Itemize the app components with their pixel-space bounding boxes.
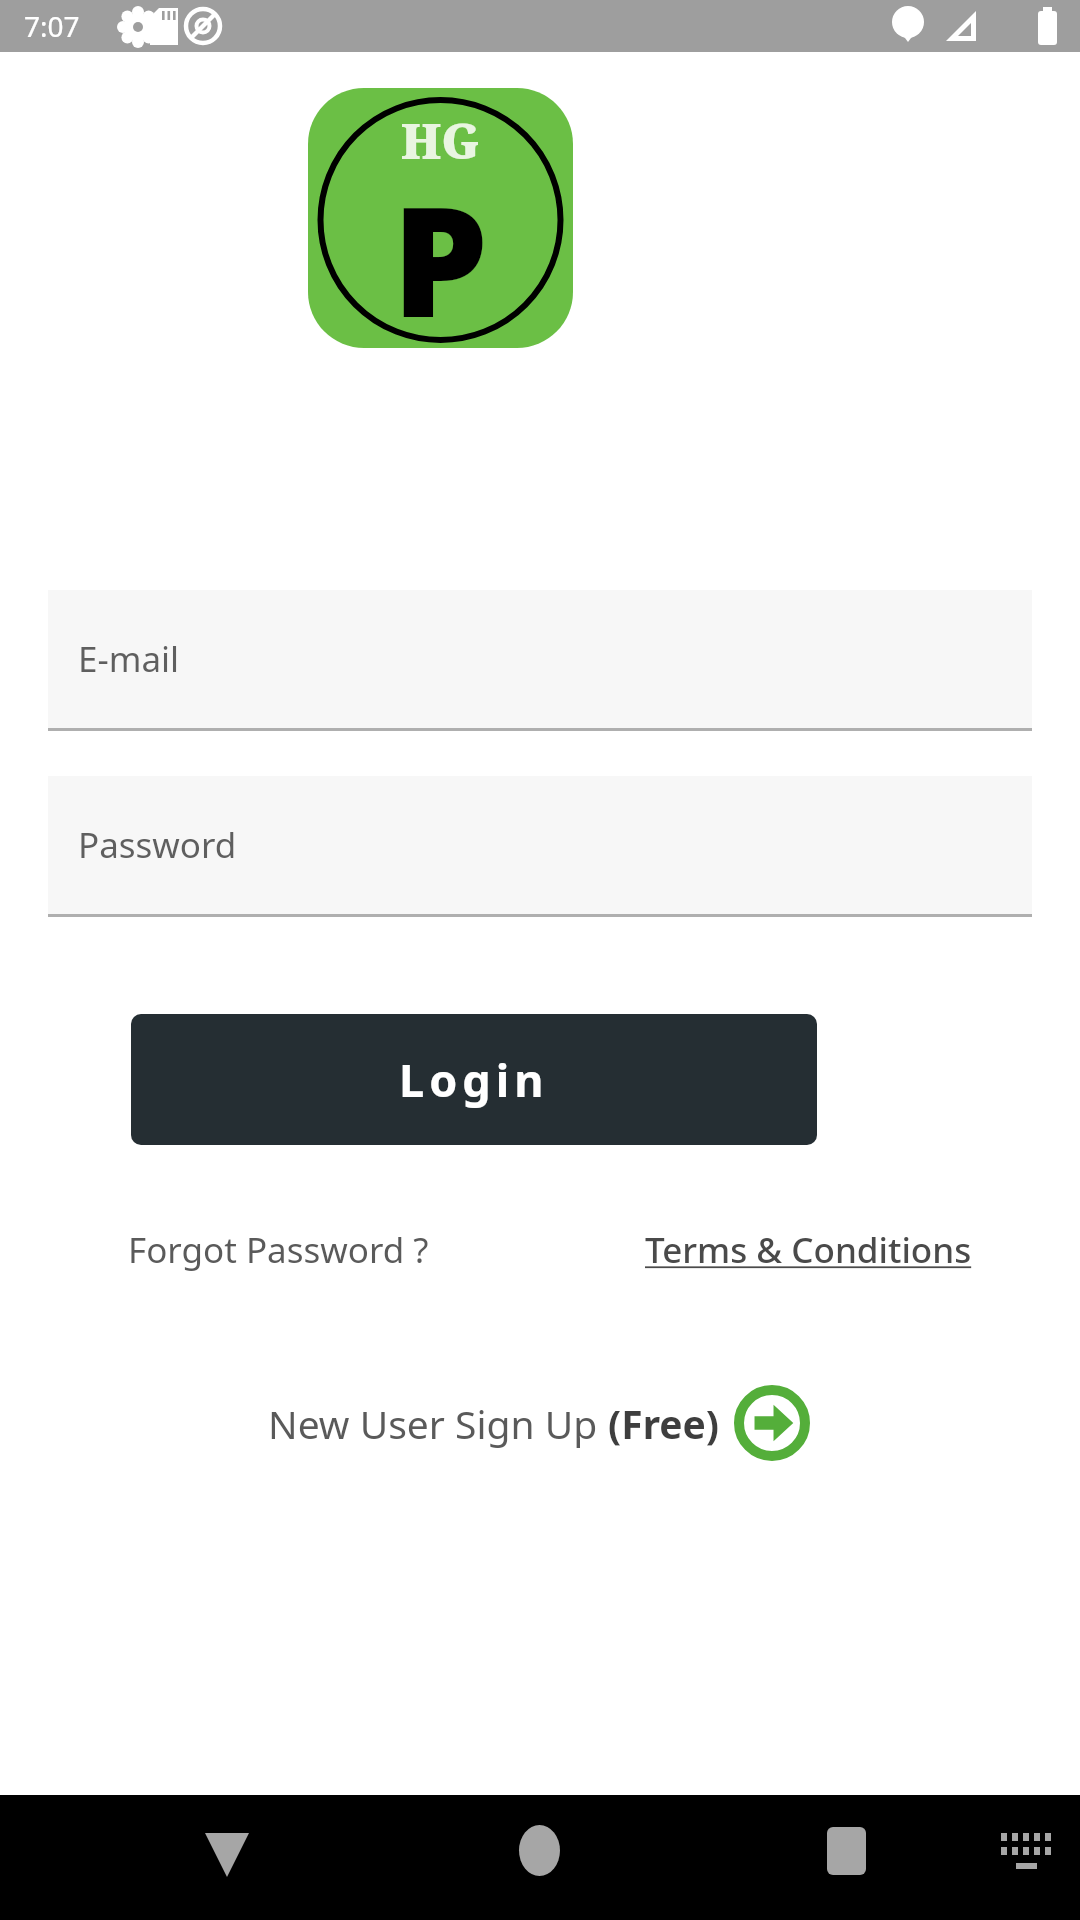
staticText: 7:07 <box>24 7 80 45</box>
staticText: (Free) <box>608 1397 720 1450</box>
button[interactable]: New User Sign Up <box>268 1385 810 1461</box>
button[interactable]: E-mail <box>48 590 1032 731</box>
button[interactable]: Keyboard <box>975 1795 1080 1920</box>
staticText: E-mail <box>78 635 180 683</box>
button[interactable]: Back <box>170 1795 284 1920</box>
button[interactable]: Forgot Password ? <box>128 1226 429 1274</box>
button[interactable]: Recents <box>790 1795 904 1920</box>
button[interactable]: Login <box>131 1014 817 1145</box>
button[interactable]: Password <box>48 776 1032 917</box>
staticText: HG <box>401 108 481 173</box>
staticText: Terms & Conditions <box>645 1226 972 1274</box>
staticText: Forgot Password ? <box>128 1226 429 1274</box>
staticText: P <box>392 155 489 330</box>
button[interactable]: Home <box>483 1795 597 1920</box>
staticText: Password <box>78 821 237 869</box>
staticText: Login <box>399 1049 549 1110</box>
staticText: New User Sign Up <box>268 1397 608 1450</box>
other: Sign up <box>734 1385 810 1461</box>
button[interactable]: Terms & Conditions <box>645 1226 972 1274</box>
